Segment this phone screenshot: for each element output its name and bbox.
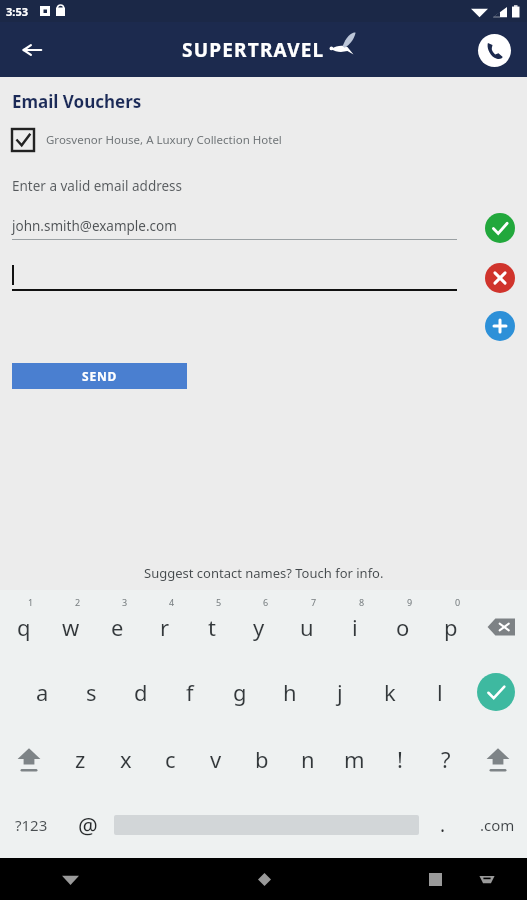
button[interactable]: 6 [235,590,283,658]
staticText: o [396,612,410,642]
staticText: .com [480,815,515,835]
button[interactable]: Add email address [483,309,517,343]
button[interactable]: 8 [331,590,379,658]
button[interactable]: SEND [12,363,187,389]
button[interactable]: . [419,792,467,858]
staticText: p [444,612,458,642]
staticText: Grosvenor House, A Luxury Collection Hot… [46,132,282,148]
button[interactable]: s [67,658,116,725]
staticText: 8 [359,596,365,608]
button[interactable]: Backspace [475,590,527,658]
button[interactable]: Remove email [483,261,517,295]
staticText: ? [441,744,451,774]
button[interactable]: Suggest contact names? Touch for info. [0,556,527,590]
button[interactable]: v [193,725,239,792]
button[interactable]: 3 [94,590,141,658]
staticText: i [352,612,358,642]
button[interactable]: h [265,658,315,725]
staticText: 5 [216,596,222,608]
staticText: ! [397,744,403,774]
staticText: y [253,612,265,642]
staticText: e [111,612,124,642]
staticText: 4 [169,596,175,608]
staticText: b [255,744,269,774]
button[interactable]: Shift [469,725,527,792]
staticText: Suggest contact names? Touch for info. [144,564,384,582]
staticText: SEND [82,368,118,384]
staticText: 2 [75,596,81,608]
button[interactable]: 7 [283,590,331,658]
button[interactable]: Shift [0,725,58,792]
button[interactable]: Valid email [483,211,517,245]
button[interactable]: @ [62,792,114,858]
button[interactable]: ?123 [0,792,62,858]
staticText: w [62,612,80,642]
button[interactable]: 1 [0,590,47,658]
button[interactable]: j [315,658,365,725]
button[interactable]: Hide keyboard [0,858,140,900]
button[interactable]: Back [8,26,56,74]
button[interactable]: l [415,658,465,725]
button[interactable]: d [116,658,165,725]
button[interactable]: k [365,658,415,725]
staticText: r [160,612,170,642]
staticText: v [210,744,222,774]
button[interactable]: m [331,725,377,792]
button[interactable]: b [239,725,285,792]
staticText: k [384,677,396,707]
button[interactable]: Recent apps [415,859,455,899]
button[interactable]: 0 [427,590,475,658]
button[interactable]: 4 [141,590,188,658]
staticText: SUPERTRAVEL [182,37,325,63]
staticText: ?123 [15,815,48,835]
button[interactable]: n [285,725,331,792]
staticText: x [120,744,132,774]
staticText: 6 [263,596,269,608]
button[interactable]: a [18,658,67,725]
staticText: a [36,677,49,707]
button[interactable]: Call [473,29,515,71]
staticText: 9 [407,596,413,608]
staticText: 0 [455,596,461,608]
staticText: @ [78,810,98,840]
button[interactable] [12,265,483,287]
staticText: g [233,677,247,707]
staticText: l [437,677,443,707]
button[interactable]: 5 [188,590,235,658]
button[interactable]: ? [423,725,469,792]
button[interactable]: c [148,725,193,792]
button[interactable]: f [165,658,215,725]
staticText: h [283,677,297,707]
staticText: 7 [311,596,317,608]
button[interactable]: 9 [379,590,427,658]
button[interactable]: 2 [47,590,94,658]
staticText: Email Vouchers [12,90,142,113]
staticText: 3:53 [6,4,28,19]
staticText: c [165,744,176,774]
staticText: Enter a valid email address [12,177,183,195]
staticText: q [17,612,31,642]
staticText: d [134,677,148,707]
button[interactable]: .com [467,792,527,858]
staticText: 3 [122,596,128,608]
button[interactable]: x [103,725,148,792]
staticText: z [75,744,86,774]
staticText: n [301,744,315,774]
button[interactable]: g [215,658,265,725]
staticText: t [208,612,216,642]
button[interactable]: Grosvenor House, A Luxury Collection Hot… [12,129,515,151]
staticText: f [186,677,194,707]
button[interactable]: z [58,725,103,792]
button[interactable]: Home [219,858,309,900]
button[interactable]: Switch keyboard [467,859,507,899]
button[interactable]: ! [377,725,423,792]
staticText: j [337,677,343,707]
staticText: . [440,812,446,838]
staticText: s [86,677,97,707]
staticText: m [344,744,365,774]
staticText: u [300,612,314,642]
staticText: 1 [28,596,34,608]
button[interactable]: john.smith@example.com [12,217,177,235]
button[interactable]: Enter [465,658,527,725]
